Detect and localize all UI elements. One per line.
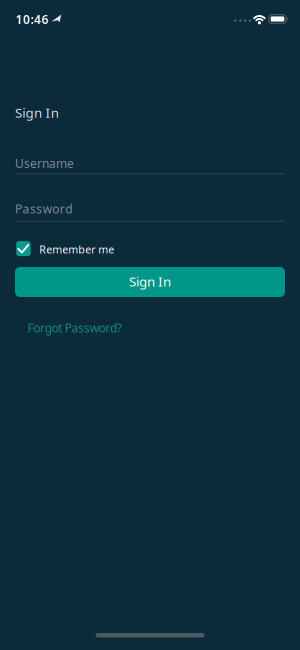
staticText: Sign In <box>15 104 59 121</box>
staticText: Sign In <box>129 272 171 290</box>
staticText: Remember me <box>39 242 114 256</box>
staticText: 10:46 <box>15 11 48 27</box>
staticText: Password <box>15 201 72 217</box>
staticText: Forgot Password? <box>27 320 122 336</box>
staticText: Username <box>15 155 74 171</box>
